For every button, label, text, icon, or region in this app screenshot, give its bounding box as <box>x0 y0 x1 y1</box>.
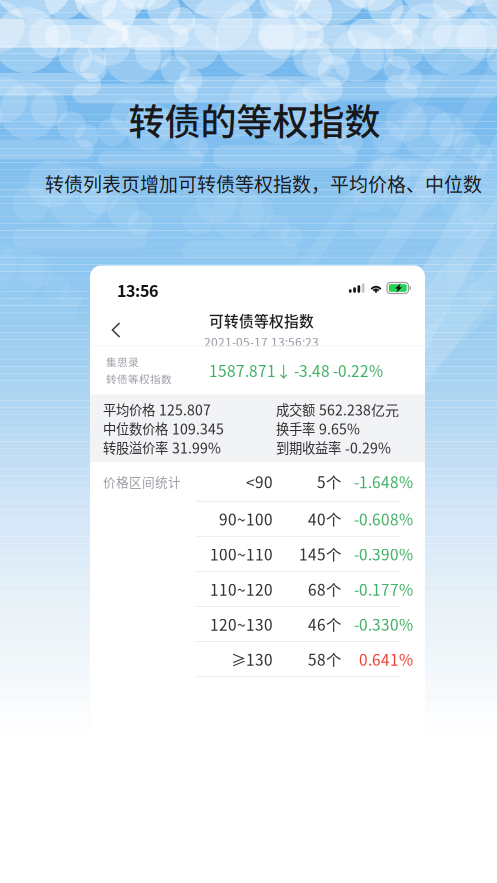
staticText: 价格区间统计 <box>103 472 181 491</box>
staticText: 转债等权指数 <box>106 371 172 386</box>
staticText: -0.390% <box>354 543 413 565</box>
staticText: ≥130 <box>231 648 273 670</box>
staticText: 110~120 <box>210 578 273 600</box>
staticText: 平均价格 <box>103 400 155 419</box>
staticText: 13:56 <box>117 278 158 302</box>
staticText: 125.807 <box>159 399 211 419</box>
staticText: -0.177% <box>354 578 413 600</box>
staticText: 1587.871↓ -3.48 -0.22% <box>209 359 383 381</box>
staticText: 0.641% <box>359 648 413 670</box>
staticText: 2021-05-17 13:56:23 <box>204 333 319 350</box>
staticText: 换手率 <box>276 419 315 438</box>
button[interactable] <box>90 607 425 641</box>
button[interactable]: 价格区间统计 <box>90 462 425 501</box>
staticText: 5个 <box>317 470 341 493</box>
staticText: 转债的等权指数 <box>128 93 380 145</box>
staticText: 成交额 <box>276 400 315 419</box>
staticText: 90~100 <box>219 508 273 530</box>
staticText: -0.608% <box>354 508 413 530</box>
button[interactable] <box>90 572 425 606</box>
button[interactable] <box>90 537 425 571</box>
staticText: -0.29% <box>345 437 391 457</box>
staticText: 40个 <box>308 508 341 530</box>
staticText: 100~110 <box>210 543 273 565</box>
staticText: 可转债等权指数 <box>209 310 314 331</box>
button[interactable]: Back <box>90 304 137 344</box>
button[interactable] <box>90 642 425 676</box>
staticText: <90 <box>246 470 273 493</box>
staticText: 转债列表页增加可转债等权指数，平均价格、中位数 <box>45 170 482 197</box>
button[interactable] <box>90 502 425 536</box>
staticText: 中位数价格 <box>103 419 168 438</box>
staticText: 562.238亿元 <box>319 399 399 419</box>
staticText: 109.345 <box>172 418 224 438</box>
staticText: 58个 <box>308 648 341 670</box>
staticText: -0.330% <box>354 613 413 635</box>
staticText: 46个 <box>308 613 341 635</box>
staticText: 集思录 <box>106 354 139 369</box>
staticText: 31.99% <box>172 437 221 457</box>
staticText: 68个 <box>308 578 341 600</box>
staticText: 9.65% <box>319 418 360 438</box>
staticText: 转股溢价率 <box>103 438 168 457</box>
staticText: -1.648% <box>354 470 413 493</box>
staticText: 到期收益率 <box>276 438 341 457</box>
staticText: 145个 <box>299 543 341 565</box>
staticText: 120~130 <box>210 613 273 635</box>
